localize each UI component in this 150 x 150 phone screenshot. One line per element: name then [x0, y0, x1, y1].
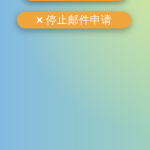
staticText: 停止邮件申请	[46, 13, 112, 26]
button[interactable]: 停止邮件申请	[17, 11, 131, 28]
